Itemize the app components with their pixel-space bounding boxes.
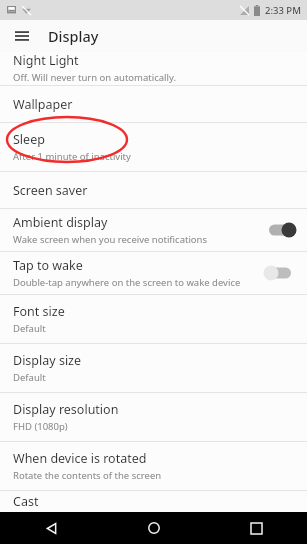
button[interactable]: Ambient display on (263, 219, 297, 241)
button[interactable]: Tap to wake off (263, 262, 297, 284)
button[interactable]: Tap to wake (0, 252, 307, 294)
staticText: Default (13, 322, 46, 335)
staticText: Double-tap anywhere on the screen to wak… (13, 276, 241, 289)
button[interactable]: Cast (0, 491, 307, 512)
staticText: Screen saver (13, 182, 88, 199)
button[interactable]: Display resolution (0, 393, 307, 441)
staticText: Night Light (13, 52, 79, 69)
button[interactable]: Back (0, 512, 103, 544)
button[interactable]: When device is rotated (0, 442, 307, 490)
staticText: Default (13, 371, 46, 384)
button[interactable]: Wallpaper (0, 86, 307, 122)
button[interactable]: Night Light (0, 52, 307, 85)
staticText: Font size (13, 303, 65, 320)
button[interactable]: Font size (0, 295, 307, 343)
staticText: Display size (13, 352, 82, 369)
staticText: Display resolution (13, 401, 119, 418)
staticText: Off. Will never turn on automatically. (13, 71, 176, 84)
staticText: Wallpaper (13, 96, 73, 113)
staticText: Cast (13, 493, 39, 510)
staticText: Wake screen when you receive notificatio… (13, 233, 208, 246)
button[interactable]: Recent apps (205, 512, 307, 544)
button[interactable]: Open navigation menu (9, 23, 35, 49)
staticText: Ambient display (13, 214, 108, 231)
button[interactable]: Screen saver (0, 172, 307, 208)
staticText: FHD (1080p) (13, 420, 68, 433)
staticText: 2:33 PM (265, 4, 301, 17)
button[interactable]: Home (103, 512, 205, 544)
staticText: Tap to wake (13, 257, 83, 274)
staticText: After 1 minute of inactivity (13, 150, 131, 163)
staticText: Rotate the contents of the screen (13, 469, 162, 482)
button[interactable]: Display size (0, 344, 307, 392)
staticText: When device is rotated (13, 450, 147, 467)
staticText: Display (48, 26, 99, 46)
button[interactable]: Ambient display (0, 209, 307, 251)
staticText: Sleep (13, 131, 45, 148)
button[interactable]: Sleep (0, 123, 307, 171)
